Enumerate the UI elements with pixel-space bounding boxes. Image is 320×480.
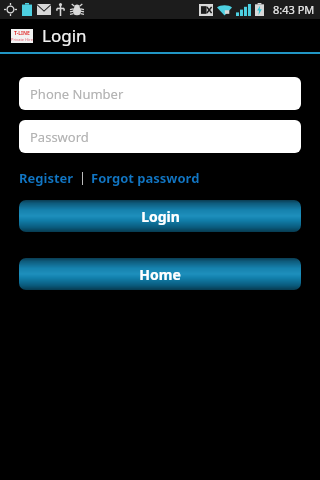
button[interactable]: Login [19,200,301,232]
staticText: Register [19,169,74,187]
staticText: 8:43 PM [273,2,315,17]
button[interactable]: Forgot password [91,169,200,187]
staticText: Forgot password [91,169,200,187]
button[interactable]: Home [19,258,301,290]
staticText: Login [141,207,180,226]
staticText: Private Hire [11,37,33,42]
staticText: Password [30,128,89,146]
staticText: Home [139,265,181,284]
button[interactable]: Register [19,169,74,187]
staticText: Login [42,24,87,47]
button[interactable]: Phone Number [19,77,301,110]
button[interactable]: Password [19,120,301,153]
staticText: T-LINE [14,30,30,37]
staticText: Phone Number [30,85,124,103]
